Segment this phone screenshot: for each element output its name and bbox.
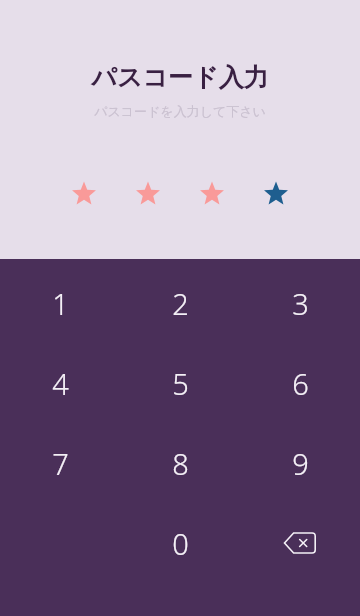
button[interactable]: 3 [240, 263, 360, 343]
staticText: 6 [292, 364, 309, 403]
button[interactable]: 6 [240, 343, 360, 423]
staticText: 5 [172, 364, 189, 403]
button[interactable]: 8 [120, 423, 240, 503]
button[interactable]: 0 [120, 503, 240, 583]
staticText: パスコードを入力して下さい [94, 103, 266, 119]
staticText: 1 [52, 284, 69, 323]
staticText: 7 [52, 444, 69, 483]
button[interactable]: Backspace [240, 503, 360, 583]
staticText: 3 [292, 284, 309, 323]
staticText: 2 [172, 284, 189, 323]
button[interactable]: 2 [120, 263, 240, 343]
button[interactable]: 1 [0, 263, 120, 343]
staticText: パスコード入力 [91, 62, 269, 93]
button[interactable]: 5 [120, 343, 240, 423]
staticText: 4 [52, 364, 69, 403]
staticText: 8 [172, 444, 189, 483]
button[interactable]: 7 [0, 423, 120, 503]
button[interactable]: 4 [0, 343, 120, 423]
button[interactable]: 9 [240, 423, 360, 503]
staticText: 0 [172, 524, 189, 563]
staticText: 9 [292, 444, 309, 483]
